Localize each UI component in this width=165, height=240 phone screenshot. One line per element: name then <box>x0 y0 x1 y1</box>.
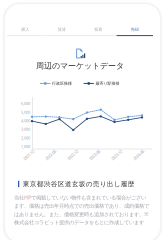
button[interactable]: 投資 <box>80 23 116 41</box>
button[interactable]: 売却 <box>116 23 153 41</box>
staticText: 2022.06 <box>44 152 57 158</box>
staticText: 4,000 <box>21 118 30 123</box>
staticText: 2021.12 <box>22 152 35 158</box>
staticText: 1,000 <box>21 144 30 149</box>
staticText: 2022.12 <box>66 152 79 158</box>
staticText: 2023.12 <box>110 152 123 158</box>
staticText: 2024.06 <box>132 152 145 158</box>
staticText: 2,000 <box>21 135 30 140</box>
staticText: 東京都渋谷区道玄坂の売り出し履歴 <box>23 180 135 188</box>
staticText: 5,000 <box>21 109 30 115</box>
staticText: 行政区推移 <box>52 81 72 86</box>
button[interactable]: 賃貸 <box>43 23 80 41</box>
staticText: 購入 <box>21 27 29 32</box>
staticText: 周辺のマーケットデータ <box>36 61 124 71</box>
staticText: 投資 <box>94 27 102 32</box>
staticText: 売却 <box>131 27 139 32</box>
staticText: 6,000 <box>21 101 30 106</box>
button[interactable]: 東京都渋谷区道玄坂の売り出し履歴 <box>18 180 154 188</box>
staticText: 賃貸 <box>58 27 66 32</box>
staticText: 3,000 <box>21 127 30 132</box>
staticText: 当社HPで掲載していない物件も含まれている場合がございます。価格は売出年月時点で… <box>14 194 149 226</box>
staticText: 2023.06 <box>88 152 101 158</box>
button[interactable]: 購入 <box>7 23 43 41</box>
staticText: 最寄り駅推移 <box>95 81 119 86</box>
